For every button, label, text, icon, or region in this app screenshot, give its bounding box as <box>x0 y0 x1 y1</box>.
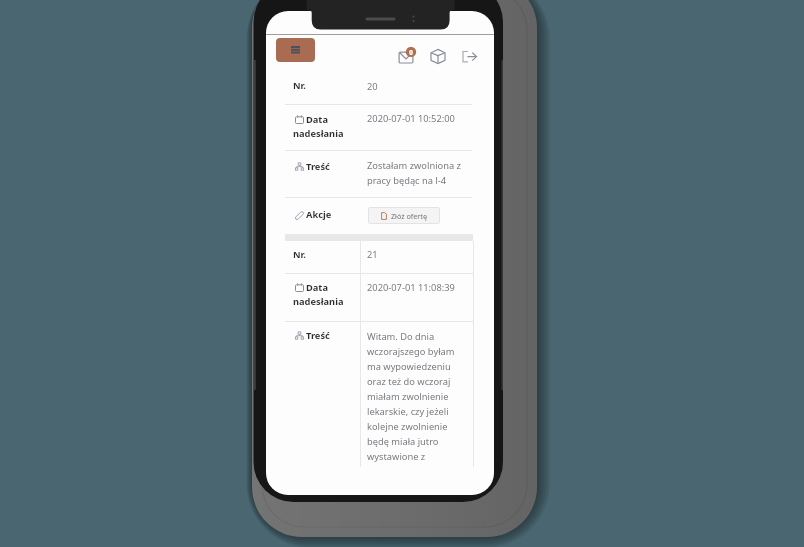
staticText: 2020-07-01 11:08:39 <box>367 281 475 294</box>
staticText: 0 <box>408 48 414 56</box>
staticText: Złóż ofertę <box>391 211 427 221</box>
staticText: Treść <box>306 160 330 173</box>
staticText: Data <box>306 113 328 126</box>
button[interactable]: Messages <box>394 45 420 71</box>
button[interactable]: Packages <box>425 44 451 70</box>
button[interactable]: Złóż ofertę <box>368 207 440 224</box>
staticText: 20 <box>367 80 475 93</box>
staticText: 2020-07-01 10:52:00 <box>367 112 475 125</box>
button[interactable]: Log out <box>457 44 483 70</box>
staticText: 21 <box>367 248 475 261</box>
staticText: Witam. Do dnia wczorajszego byłam ma wyp… <box>367 330 475 462</box>
staticText: Nr. <box>293 248 306 261</box>
staticText: nadesłania <box>293 127 344 140</box>
staticText: Akcje <box>306 208 332 221</box>
button[interactable]: Menu <box>276 38 315 62</box>
staticText: Zostałam zwolniona z pracy będąc na l-4 <box>367 159 475 186</box>
staticText: Data <box>306 281 328 294</box>
staticText: nadesłania <box>293 295 344 308</box>
staticText: Treść <box>306 329 330 342</box>
staticText: Nr. <box>293 79 306 92</box>
